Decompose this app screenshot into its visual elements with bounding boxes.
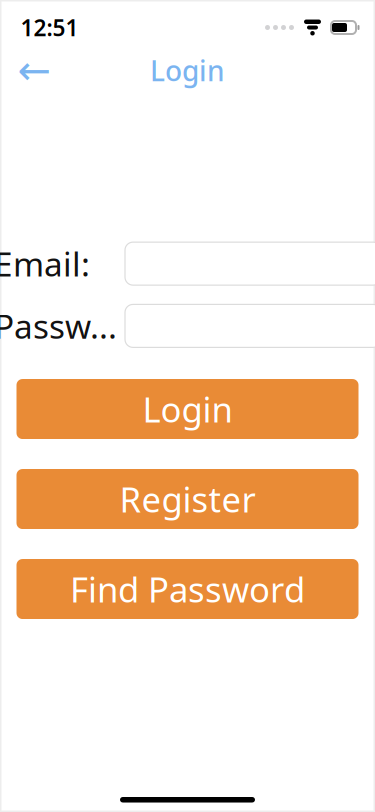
button[interactable]: Passw... [125,304,375,347]
staticText: Login [142,386,232,432]
staticText: Login [150,52,225,89]
button[interactable]: Back [12,48,56,92]
button[interactable]: Register [16,469,358,529]
staticText: Find Password [70,566,305,612]
staticText: 12:51 [20,12,78,42]
staticText: ← [17,48,51,93]
button[interactable]: Login [16,379,358,439]
staticText: Email: [0,241,90,286]
button[interactable]: Find Password [16,559,358,619]
button[interactable]: Email: [125,242,375,285]
staticText: Passw... [0,304,117,348]
staticText: Register [119,476,255,522]
